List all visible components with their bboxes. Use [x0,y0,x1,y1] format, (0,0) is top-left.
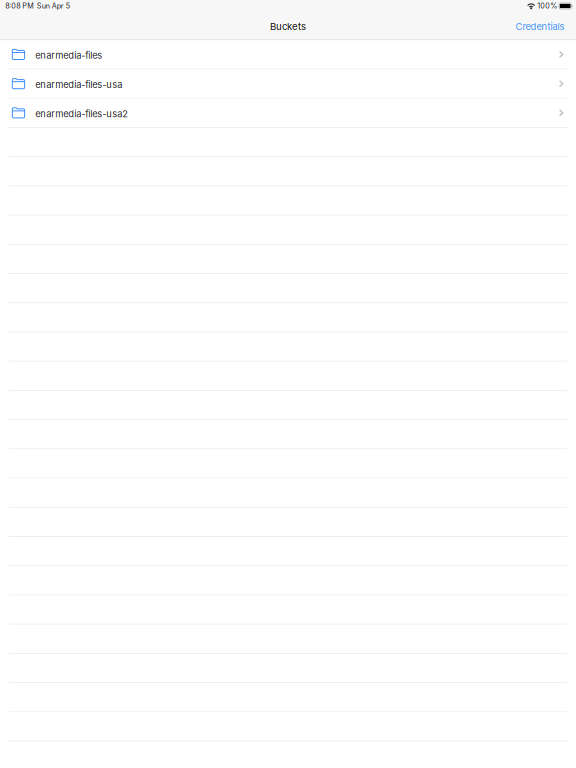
staticText: 8:08 PM [5,2,34,10]
staticText: enarmedia-files-usa [35,79,122,90]
staticText: Credentials [515,21,564,32]
staticText: 100% [537,2,557,10]
staticText: Buckets [270,21,306,32]
button[interactable]: enarmedia-files-usa2 [0,99,576,128]
button[interactable]: enarmedia-files-usa [0,69,576,99]
staticText: Sun Apr 5 [37,2,70,10]
button[interactable]: Credentials [510,16,569,37]
staticText: enarmedia-files-usa2 [35,108,128,119]
button[interactable]: enarmedia-files [0,40,576,69]
staticText: enarmedia-files [35,50,102,61]
